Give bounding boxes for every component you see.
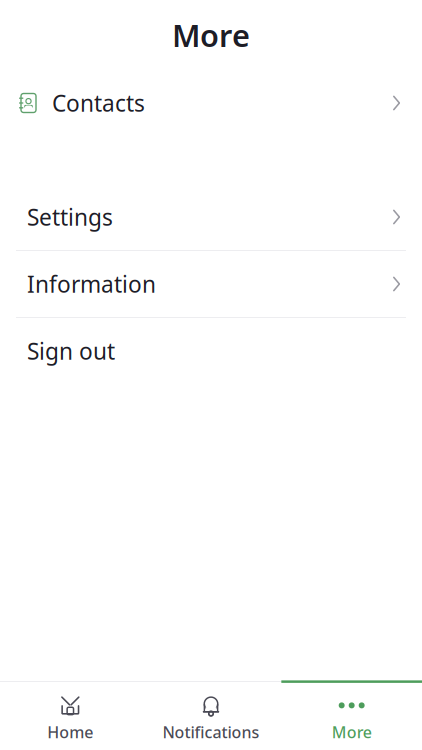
staticText: Sign out — [27, 336, 115, 366]
button[interactable]: Sign out — [0, 318, 422, 384]
staticText: More — [172, 15, 250, 55]
button[interactable]: Settings — [0, 184, 422, 250]
button[interactable]: More — [281, 681, 422, 750]
staticText: More — [332, 721, 372, 743]
staticText: Information — [27, 269, 156, 299]
staticText: Home — [47, 721, 93, 743]
button[interactable]: Home — [0, 681, 141, 750]
staticText: Settings — [27, 202, 113, 232]
button[interactable]: Contacts — [0, 70, 422, 136]
staticText: Notifications — [162, 721, 259, 743]
button[interactable]: Notifications — [141, 681, 281, 750]
button[interactable]: Information — [0, 251, 422, 317]
staticText: Contacts — [52, 88, 145, 118]
